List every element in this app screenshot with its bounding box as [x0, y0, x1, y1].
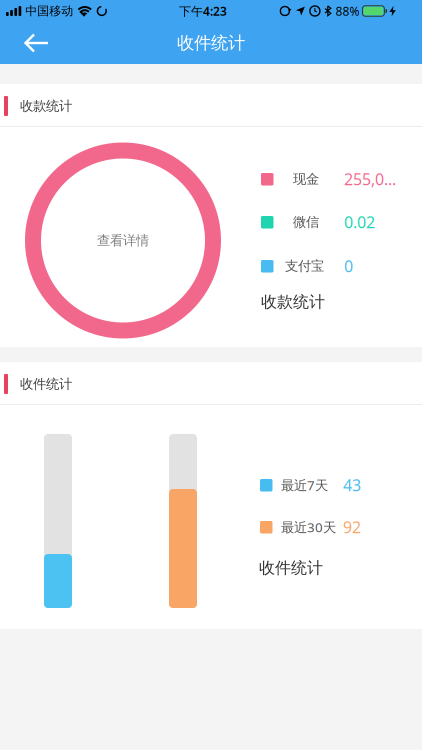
staticText: 最近7天: [281, 476, 328, 494]
staticText: 0.02: [344, 211, 375, 233]
staticText: 92: [343, 516, 361, 538]
staticText: 微信: [293, 214, 319, 230]
staticText: 收款统计: [20, 98, 72, 114]
staticText: 88%: [335, 3, 359, 19]
staticText: 中国移动: [25, 4, 73, 18]
staticText: 255,0...: [344, 168, 396, 190]
staticText: 0: [344, 255, 353, 277]
button[interactable]: 查看详情: [25, 142, 221, 338]
staticText: 查看详情: [97, 232, 149, 249]
staticText: 下午4:23: [179, 3, 227, 19]
staticText: 收款统计: [261, 292, 325, 312]
staticText: 43: [343, 474, 361, 496]
staticText: 支付宝: [285, 258, 324, 274]
staticText: 收件统计: [20, 376, 72, 392]
button[interactable]: 返回: [0, 22, 61, 64]
staticText: 现金: [293, 171, 319, 187]
staticText: 收件统计: [177, 32, 245, 54]
staticText: 最近30天: [281, 518, 336, 536]
staticText: 收件统计: [259, 558, 323, 578]
